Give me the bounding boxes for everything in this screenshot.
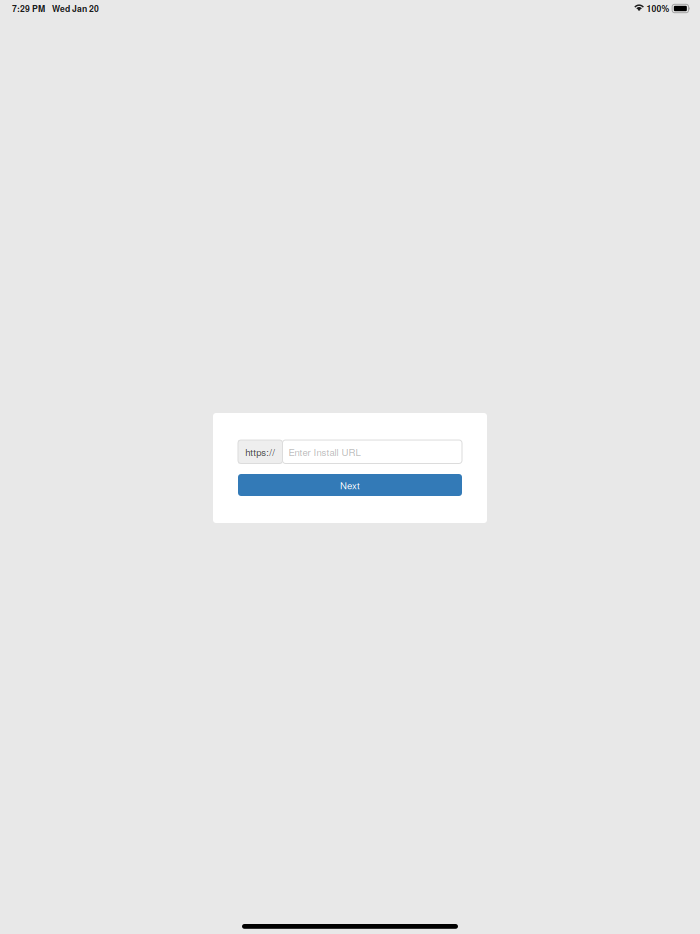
staticText: Wed Jan 20: [52, 2, 99, 15]
button[interactable]: Enter Install URL: [282, 440, 462, 463]
staticText: Enter Install URL: [288, 445, 360, 459]
staticText: Next: [340, 478, 360, 492]
staticText: 7:29 PM: [12, 2, 45, 15]
button[interactable]: Next: [238, 474, 462, 496]
staticText: https://: [245, 445, 275, 459]
staticText: 100%: [646, 2, 669, 15]
